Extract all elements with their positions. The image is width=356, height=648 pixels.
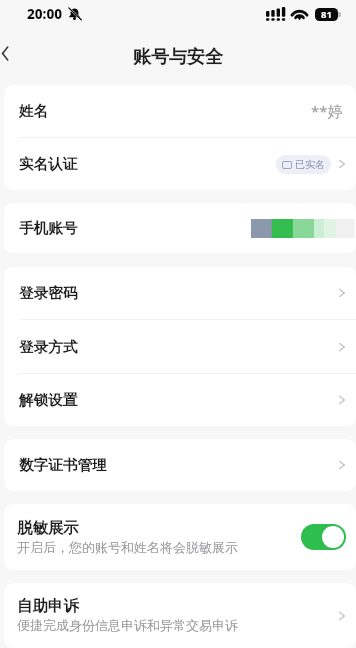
button[interactable]: 解锁设置 xyxy=(4,374,356,426)
button[interactable]: 姓名 xyxy=(4,85,356,137)
button[interactable]: 登录方式 xyxy=(4,320,356,373)
button[interactable]: 脱敏展示 xyxy=(4,504,356,570)
staticText: 便捷完成身份信息申诉和异常交易申诉 xyxy=(17,617,238,633)
staticText: 开启后，您的账号和姓名将会脱敏展示 xyxy=(17,539,238,555)
button[interactable]: 脱敏展示开关 xyxy=(301,524,346,550)
staticText: 脱敏展示 xyxy=(17,518,79,537)
button[interactable]: 实名认证 xyxy=(4,138,356,190)
staticText: 自助申诉 xyxy=(17,596,79,615)
staticText: 账号与安全 xyxy=(133,46,223,69)
staticText: 登录方式 xyxy=(19,338,78,356)
staticText: **婷 xyxy=(311,101,343,121)
staticText: 解锁设置 xyxy=(19,391,78,409)
button[interactable]: Back xyxy=(0,36,24,76)
button[interactable]: 手机账号 xyxy=(4,203,356,253)
staticText: 数字证书管理 xyxy=(19,456,107,474)
staticText: 20:00 xyxy=(27,5,63,23)
staticText: 姓名 xyxy=(19,102,49,120)
button[interactable]: 数字证书管理 xyxy=(4,439,356,491)
button[interactable]: 登录密码 xyxy=(4,267,356,319)
button[interactable]: 自助申诉 xyxy=(4,583,356,648)
staticText: 登录密码 xyxy=(19,284,78,302)
staticText: 手机账号 xyxy=(19,219,78,237)
staticText: 81 xyxy=(321,8,332,21)
staticText: 已实名 xyxy=(295,158,325,171)
staticText: 实名认证 xyxy=(19,155,78,173)
